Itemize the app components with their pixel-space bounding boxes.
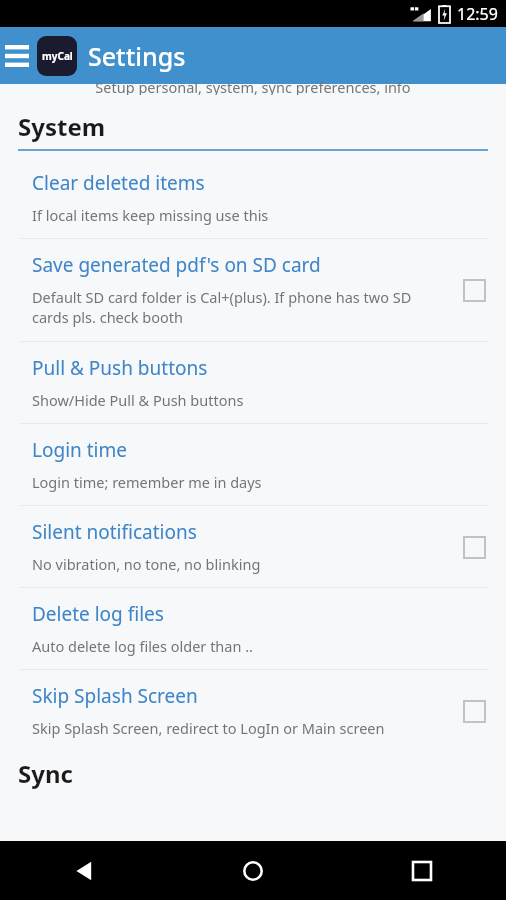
staticText: Pull & Push buttons <box>32 355 208 381</box>
button[interactable]: App logo <box>37 36 77 76</box>
staticText: myCal <box>42 49 73 63</box>
staticText: Default SD card folder is Cal+(plus). If… <box>32 287 446 328</box>
staticText: Skip Splash Screen, redirect to LogIn or… <box>32 718 385 738</box>
button[interactable]: Toggle option <box>454 270 494 310</box>
button[interactable]: Login time <box>0 424 506 505</box>
staticText: 12:59 <box>457 3 498 25</box>
staticText: Silent notifications <box>32 519 197 545</box>
button[interactable]: Save generated pdf's on SD card <box>0 239 506 341</box>
staticText: Settings <box>88 39 186 73</box>
staticText: Clear deleted items <box>32 170 205 196</box>
staticText: Setup personal, system, sync preferences… <box>95 77 411 95</box>
button[interactable]: Toggle option <box>454 691 494 731</box>
button[interactable]: Home <box>168 841 337 900</box>
button[interactable]: Skip Splash Screen <box>0 670 506 751</box>
staticText: No vibration, no tone, no blinking <box>32 554 261 574</box>
button[interactable]: Pull & Push buttons <box>0 342 506 423</box>
staticText: Auto delete log files older than .. <box>32 636 253 656</box>
staticText: Show/Hide Pull & Push buttons <box>32 390 244 410</box>
staticText: System <box>18 110 106 143</box>
button[interactable]: Toggle option <box>454 527 494 567</box>
button[interactable]: Silent notifications <box>0 506 506 587</box>
staticText: Skip Splash Screen <box>32 683 198 709</box>
button[interactable]: Clear deleted items <box>0 157 506 238</box>
staticText: If local items keep missing use this <box>32 205 269 225</box>
staticText: Login time <box>32 437 127 463</box>
button[interactable]: Back <box>0 841 168 900</box>
staticText: Sync <box>18 757 73 790</box>
staticText: Delete log files <box>32 601 164 627</box>
button[interactable]: Delete log files <box>0 588 506 669</box>
button[interactable]: Open navigation menu <box>2 39 32 73</box>
button[interactable]: Recent apps <box>337 841 506 900</box>
staticText: Login time; remember me in days <box>32 472 262 492</box>
staticText: Save generated pdf's on SD card <box>32 252 321 278</box>
